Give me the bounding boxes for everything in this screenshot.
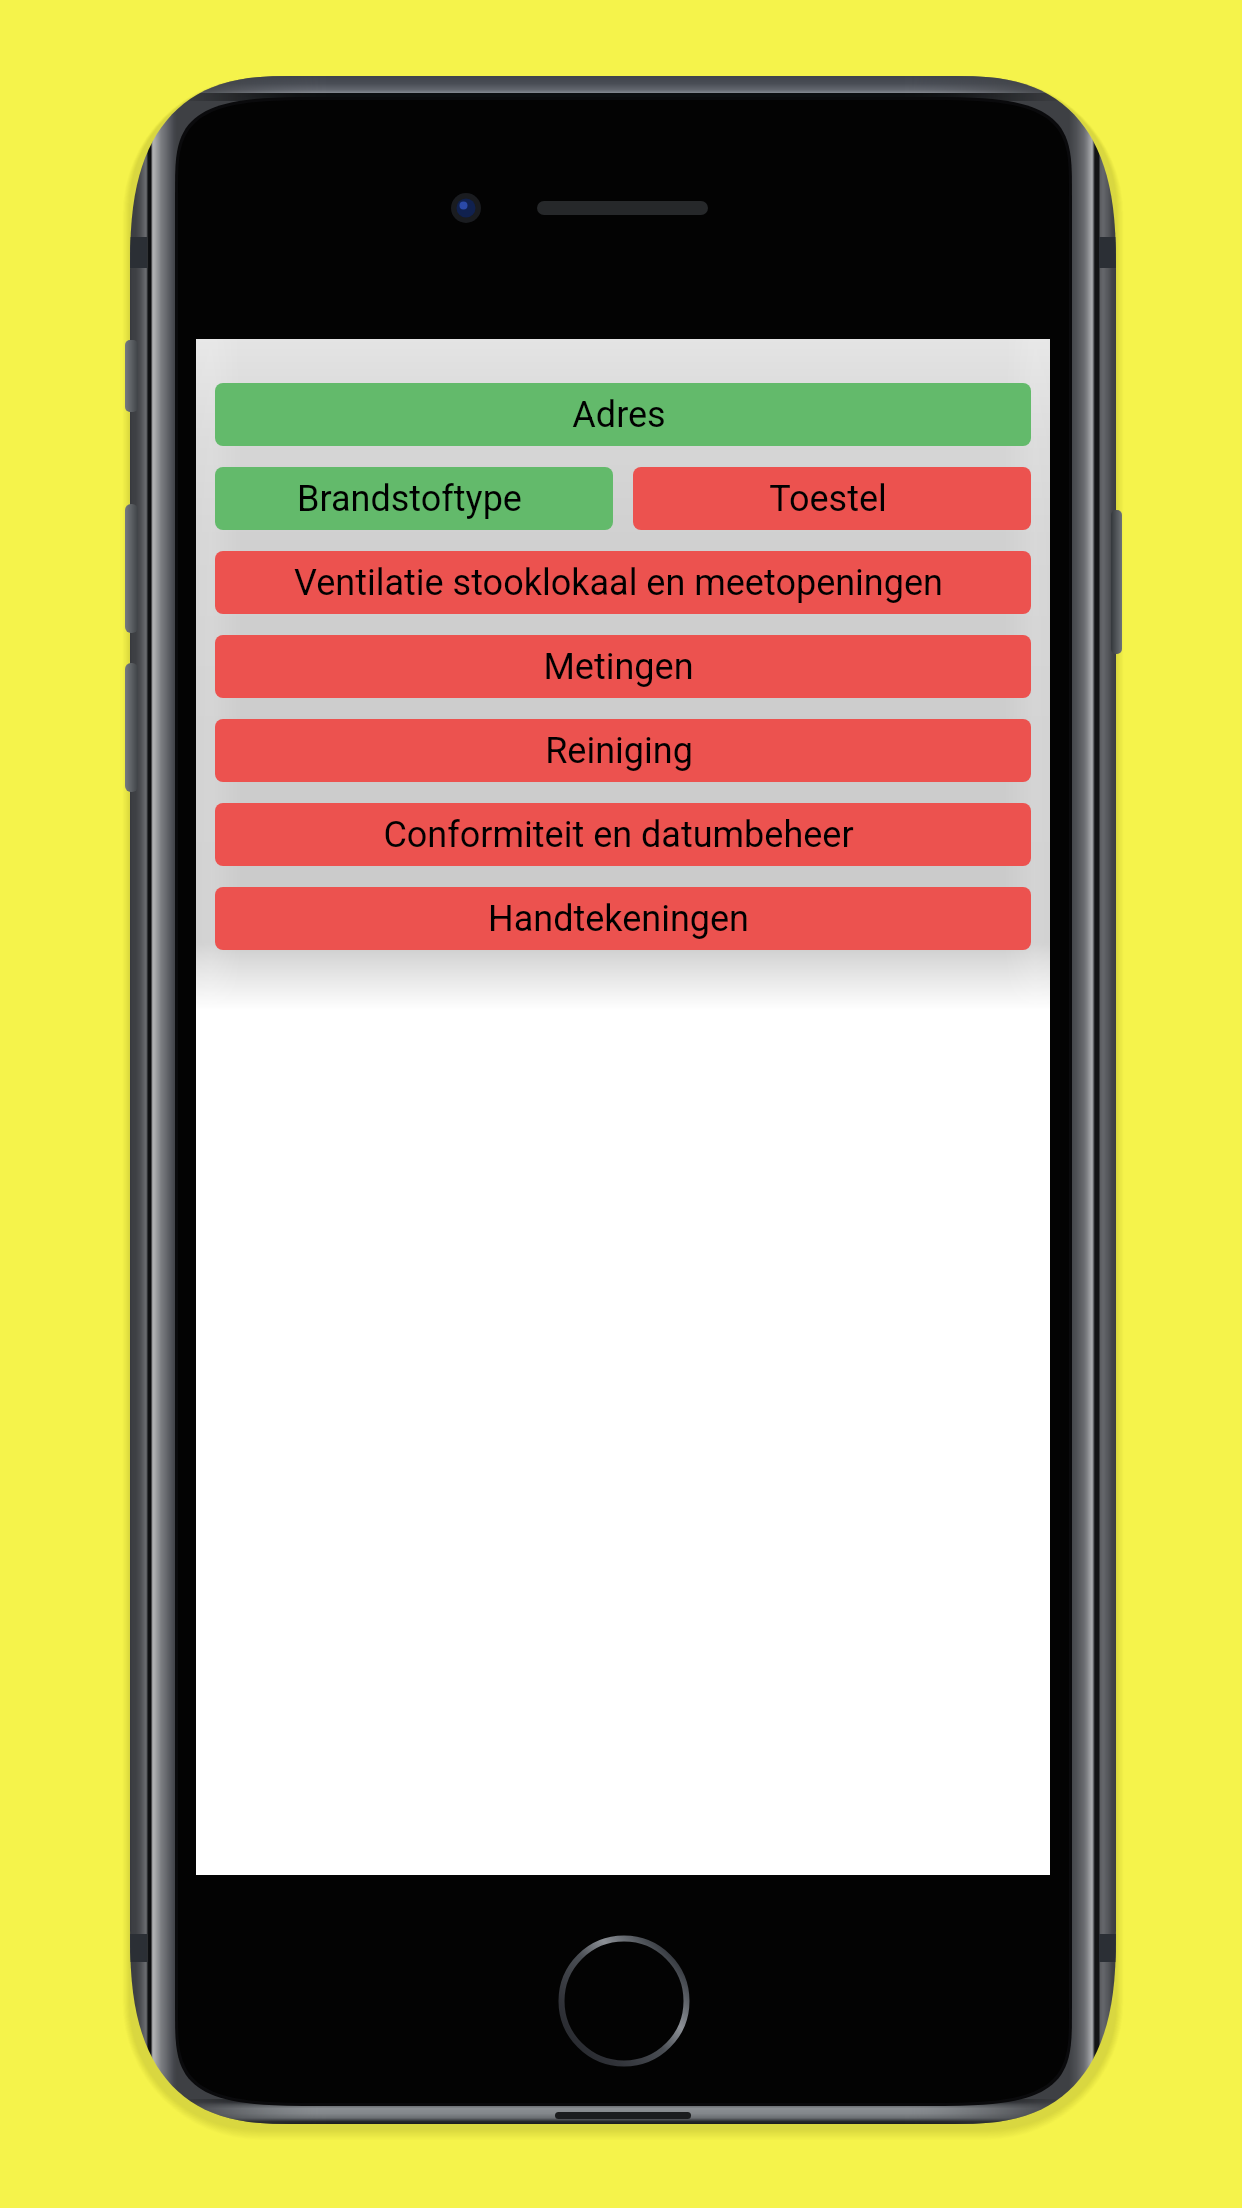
button[interactable]: Conformiteit en datumbeheer bbox=[215, 803, 1031, 866]
staticText: Adres bbox=[572, 394, 666, 436]
button[interactable]: Brandstoftype bbox=[215, 467, 613, 530]
staticText: Toestel bbox=[769, 478, 887, 520]
button[interactable]: Adres bbox=[215, 383, 1031, 446]
staticText: Metingen bbox=[543, 646, 694, 688]
staticText: Ventilatie stooklokaal en meetopeningen bbox=[294, 562, 943, 604]
button[interactable]: Metingen bbox=[215, 635, 1031, 698]
button[interactable]: Handtekeningen bbox=[215, 887, 1031, 950]
button[interactable]: Toestel bbox=[633, 467, 1031, 530]
staticText: Brandstoftype bbox=[297, 478, 522, 520]
staticText: Handtekeningen bbox=[488, 898, 749, 940]
button[interactable]: Ventilatie stooklokaal en meetopeningen bbox=[215, 551, 1031, 614]
button[interactable]: Reiniging bbox=[215, 719, 1031, 782]
staticText: Reiniging bbox=[545, 730, 693, 772]
staticText: Conformiteit en datumbeheer bbox=[383, 814, 854, 856]
